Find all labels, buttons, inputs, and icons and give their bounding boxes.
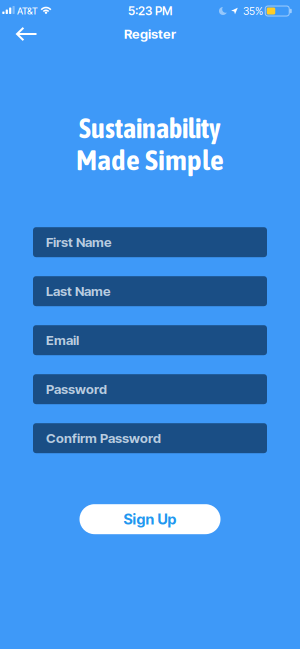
button[interactable]: First Name — [33, 227, 267, 257]
staticText: 5:23 PM — [128, 4, 172, 18]
staticText: Email — [46, 332, 79, 348]
staticText: AT&T — [17, 5, 38, 16]
staticText: 35% — [243, 5, 263, 17]
staticText: Sustainability — [79, 112, 221, 144]
button[interactable]: Sign Up — [79, 504, 220, 534]
staticText: First Name — [46, 234, 112, 250]
staticText: Sign Up — [123, 510, 176, 528]
button[interactable]: Confirm Password — [33, 423, 267, 453]
button[interactable]: Email — [33, 325, 267, 355]
button[interactable]: Back — [0, 23, 37, 45]
staticText: Password — [46, 381, 107, 397]
staticText: Last Name — [46, 283, 111, 299]
staticText: Confirm Password — [46, 430, 161, 446]
button[interactable]: Password — [33, 374, 267, 404]
button[interactable]: Last Name — [33, 276, 267, 306]
staticText: Register — [124, 26, 176, 42]
staticText: Made Simple — [76, 144, 224, 176]
